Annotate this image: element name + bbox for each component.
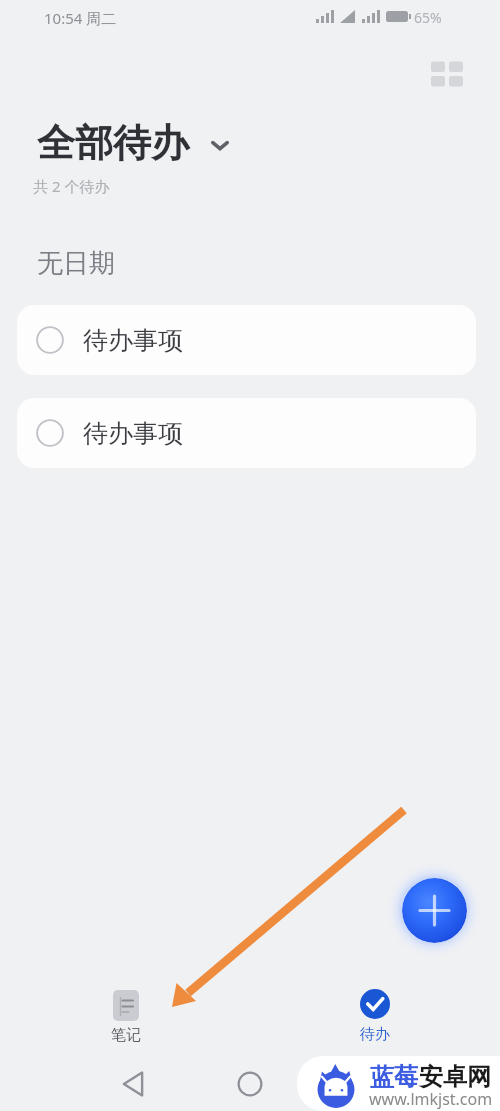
staticText: 10:54 周二 [44, 8, 117, 28]
staticText: 65% [414, 8, 442, 27]
staticText: 待办事项 [83, 325, 183, 356]
button[interactable]: Home [231, 1065, 269, 1103]
staticText: 安卓网 [419, 1062, 491, 1092]
button[interactable]: 待办事项 [17, 398, 476, 468]
staticText: 全部待办 [37, 119, 189, 167]
staticText: 待办 [360, 1025, 390, 1044]
staticText: 笔记 [111, 1026, 141, 1045]
button[interactable]: Add todo [402, 878, 467, 943]
button[interactable]: 笔记 [95, 990, 156, 1045]
button[interactable]: Change list [208, 132, 232, 156]
staticText: 待办事项 [83, 418, 183, 449]
staticText: www.lmkjst.com [369, 1088, 493, 1110]
staticText: 共 2 个待办 [33, 176, 110, 196]
button[interactable]: Back [114, 1065, 152, 1103]
button[interactable]: Switch view [426, 53, 468, 95]
staticText: 蓝莓 [370, 1062, 418, 1092]
staticText: 无日期 [37, 247, 115, 280]
button[interactable]: 待办事项 [17, 305, 476, 375]
button[interactable]: 待办 [345, 989, 405, 1044]
